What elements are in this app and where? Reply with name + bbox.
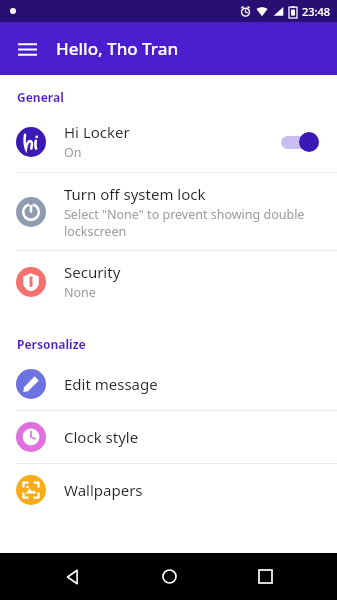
- button[interactable]: Back: [48, 553, 96, 600]
- staticText: Wallpapers: [64, 480, 143, 500]
- button[interactable]: Security: [0, 251, 337, 312]
- staticText: 23:48: [302, 4, 331, 19]
- button[interactable]: Edit message: [0, 358, 337, 410]
- button[interactable]: Clock style: [0, 411, 337, 463]
- staticText: General: [17, 89, 64, 105]
- button[interactable]: Hi Locker enabled: [277, 129, 323, 155]
- staticText: Security: [64, 262, 121, 282]
- staticText: Edit message: [64, 374, 158, 394]
- button[interactable]: Home: [145, 553, 193, 600]
- staticText: None: [64, 284, 96, 301]
- staticText: On: [64, 144, 82, 161]
- button[interactable]: Wallpapers: [0, 464, 337, 516]
- staticText: Personalize: [17, 336, 86, 352]
- staticText: Hello, Tho Tran: [56, 37, 179, 60]
- staticText: Hi Locker: [64, 122, 130, 142]
- button[interactable]: Turn off system lock: [0, 173, 337, 250]
- staticText: Select "None" to prevent showing double …: [64, 206, 323, 239]
- staticText: Turn off system lock: [64, 184, 206, 204]
- button[interactable]: Open navigation menu: [10, 32, 44, 66]
- button[interactable]: Recent apps: [241, 553, 289, 600]
- staticText: Clock style: [64, 427, 139, 447]
- button[interactable]: Hi Locker: [0, 111, 337, 172]
